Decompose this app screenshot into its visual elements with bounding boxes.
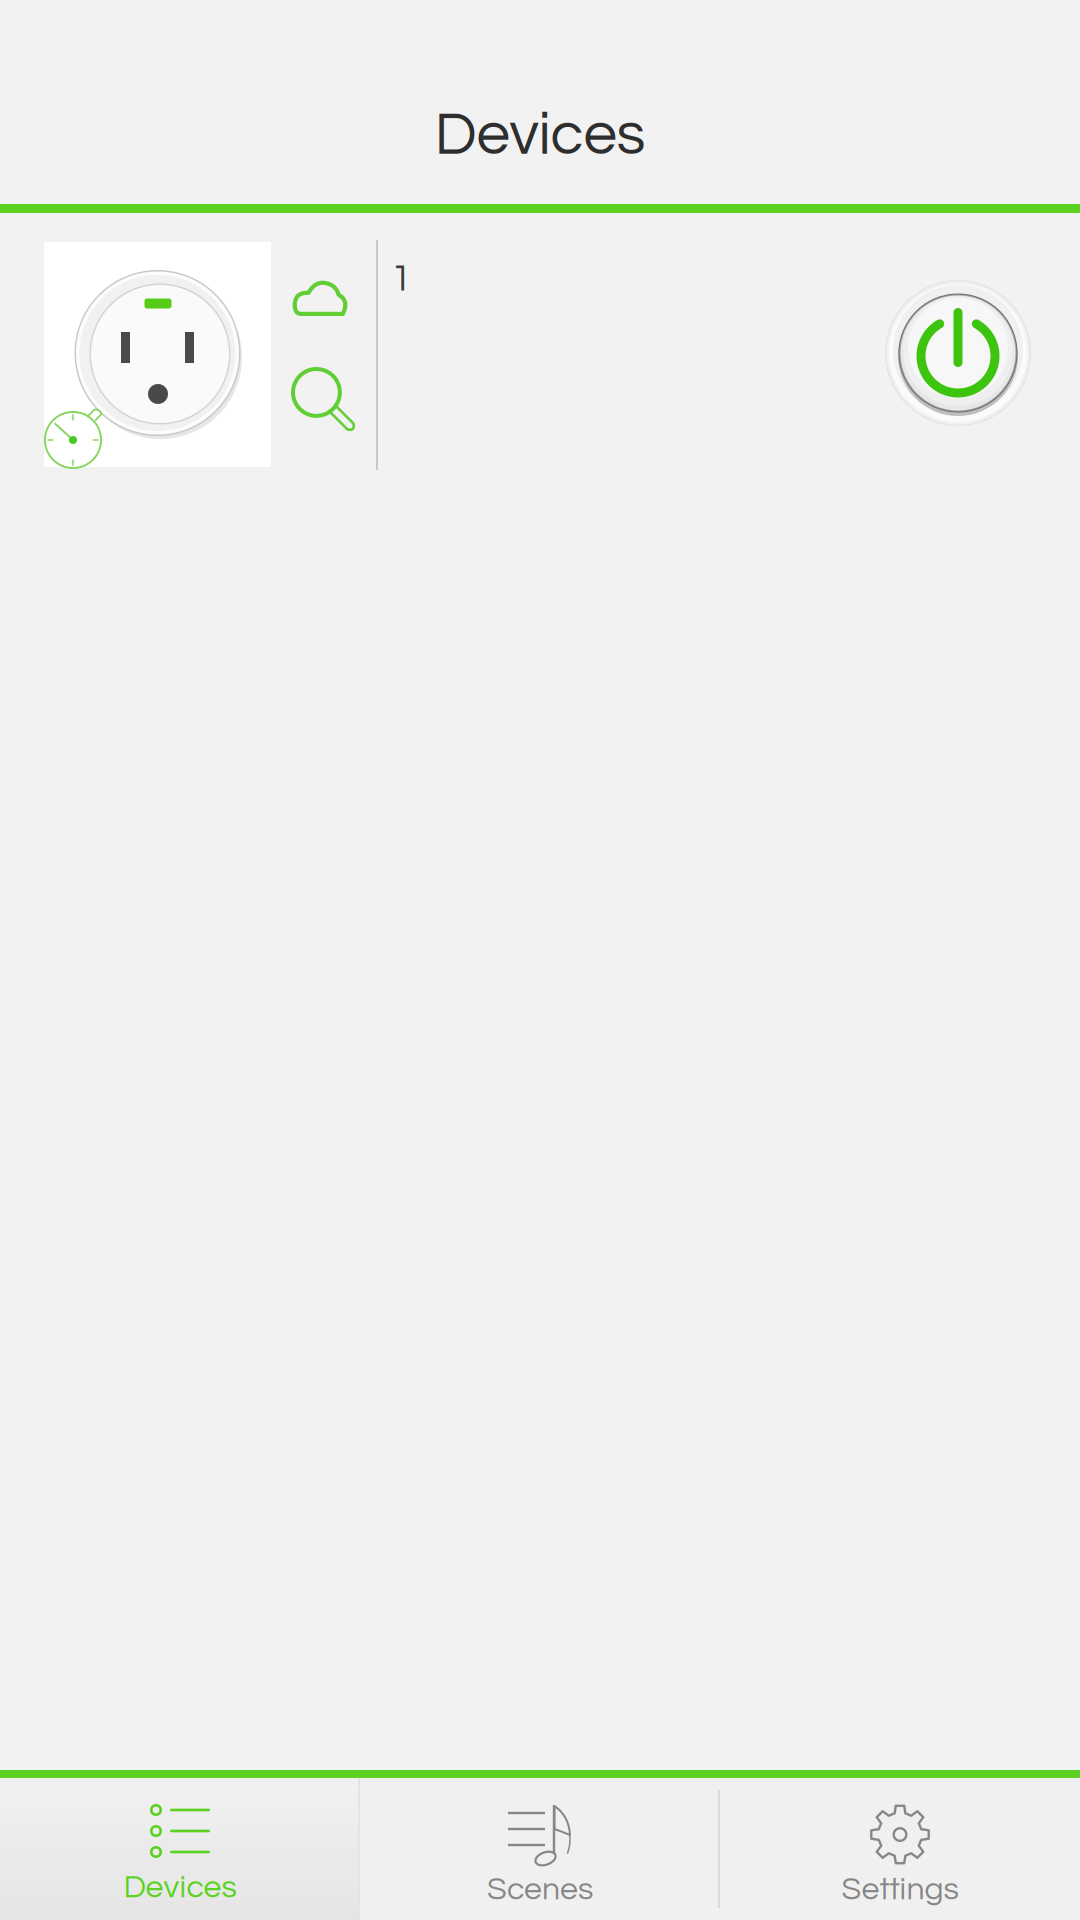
staticText: Settings xyxy=(841,1873,958,1906)
button[interactable]: Settings xyxy=(720,1778,1080,1920)
staticText: Scenes xyxy=(487,1873,593,1906)
staticText: 1 xyxy=(391,260,412,298)
button[interactable]: Scenes xyxy=(360,1778,720,1920)
staticText: Devices xyxy=(434,105,645,166)
button[interactable]: Devices xyxy=(0,1778,360,1920)
button[interactable]: 1 xyxy=(0,213,1080,498)
staticText: Devices xyxy=(123,1871,236,1904)
